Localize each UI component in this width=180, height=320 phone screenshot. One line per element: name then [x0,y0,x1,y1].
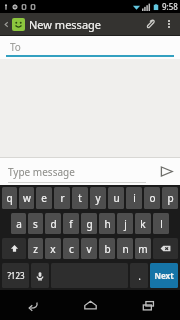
button[interactable]: m [135,238,151,259]
button[interactable]: e [36,187,52,209]
button[interactable]: Delete [153,238,178,259]
staticText: k [140,217,146,231]
staticText: e [41,191,47,205]
staticText: w [23,191,31,205]
button[interactable]: n [117,238,133,259]
staticText: b [104,242,111,256]
button[interactable]: b [99,238,115,259]
button[interactable]: Home [64,290,116,320]
button[interactable]: u [108,187,124,209]
button[interactable]: ?123 [2,263,29,288]
staticText: o [149,191,156,205]
staticText: New message [29,17,102,32]
staticText: l [160,217,163,231]
staticText: Type message [8,165,75,179]
staticText: f [69,217,73,231]
staticText: z [33,242,38,256]
button[interactable]: x [45,238,61,259]
staticText: 9:58 [162,1,178,12]
staticText: m [138,242,148,256]
staticText: y [95,191,101,205]
button[interactable]: . [130,263,148,288]
button[interactable]: r [54,187,70,209]
button[interactable]: More options [161,13,177,35]
button[interactable]: i [126,187,142,209]
button[interactable]: s [28,213,43,234]
button[interactable]: Type message [0,158,152,185]
staticText: p [167,191,174,205]
button[interactable]: q [2,187,17,209]
staticText: i [133,191,136,205]
staticText: u [113,191,120,205]
other: Back [3,21,10,28]
button[interactable]: Back [0,13,102,35]
staticText: r [60,191,65,205]
button[interactable]: w [19,187,34,209]
button[interactable]: g [81,213,97,234]
button[interactable]: Shift [2,238,26,259]
staticText: g [86,217,93,231]
button[interactable]: l [153,213,169,234]
staticText: h [104,217,111,231]
button[interactable]: c [63,238,79,259]
button[interactable]: p [162,187,178,209]
staticText: Next [154,270,174,281]
button[interactable]: h [99,213,115,234]
staticText: t [78,191,82,205]
button[interactable]: To [0,36,180,59]
button[interactable]: y [90,187,106,209]
button[interactable]: Recent apps [122,290,174,320]
staticText: ?123 [7,270,25,281]
staticText: x [50,242,56,256]
button[interactable]: j [117,213,133,234]
staticText: d [50,217,57,231]
button[interactable]: k [135,213,151,234]
button[interactable]: d [45,213,61,234]
button[interactable]: Send [152,158,180,185]
button[interactable]: Attach [139,13,161,35]
staticText: j [124,217,127,231]
staticText: . [138,269,141,283]
button[interactable]: f [63,213,79,234]
button[interactable]: t [72,187,88,209]
button[interactable]: Back [6,290,58,320]
staticText: q [6,191,13,205]
button[interactable]: Next [150,263,178,288]
staticText: To [10,40,21,54]
staticText: v [86,242,92,256]
staticText: c [69,242,74,256]
staticText: s [33,217,38,231]
button[interactable]: z [28,238,43,259]
button[interactable]: o [144,187,160,209]
button[interactable]: a [11,213,26,234]
button[interactable]: v [81,238,97,259]
staticText: a [16,217,22,231]
staticText: n [122,242,129,256]
button[interactable]: Voice input [31,263,49,288]
